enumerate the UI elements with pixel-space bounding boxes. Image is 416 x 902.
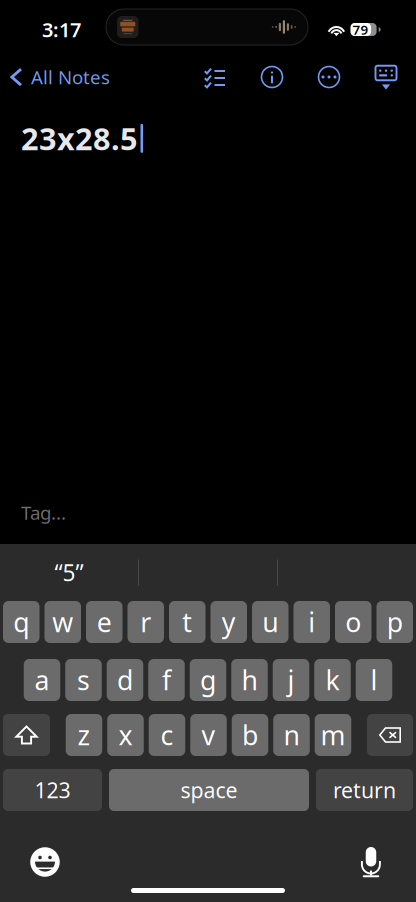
staticText: Tag... [21, 500, 66, 525]
button[interactable]: x [107, 714, 144, 756]
button[interactable]: All Notes [0, 56, 110, 98]
button[interactable]: e [86, 601, 122, 643]
staticText: n [283, 717, 299, 753]
staticText: s [77, 662, 90, 698]
button[interactable]: g [190, 659, 226, 701]
staticText: 3:17 [42, 16, 81, 43]
button[interactable]: Delete [367, 714, 413, 756]
button[interactable]: t [169, 601, 205, 643]
staticText: e [97, 604, 112, 640]
button[interactable]: k [314, 659, 351, 701]
staticText: l [370, 662, 377, 698]
staticText: k [325, 662, 339, 698]
staticText: z [77, 717, 90, 753]
staticText: space [180, 776, 237, 804]
staticText: b [242, 717, 258, 753]
staticText: p [387, 604, 403, 640]
staticText: return [333, 776, 396, 804]
button[interactable]: r [127, 601, 164, 643]
staticText: i [308, 604, 315, 640]
staticText: a [34, 662, 49, 698]
staticText: v [201, 717, 215, 753]
staticText: “5” [54, 557, 83, 587]
button[interactable]: j [273, 659, 309, 701]
button[interactable]: a [24, 659, 60, 701]
button[interactable]: Hide Keyboard [364, 55, 408, 99]
staticText: All Notes [31, 65, 110, 89]
button[interactable]: p [376, 601, 413, 643]
button[interactable]: Checklist [193, 55, 237, 99]
button[interactable]: f [148, 659, 185, 701]
button[interactable]: l [356, 659, 392, 701]
button[interactable]: q [3, 601, 39, 643]
button[interactable]: Shift [3, 714, 50, 756]
staticText: y [222, 604, 236, 640]
button[interactable]: space [109, 769, 309, 811]
staticText: j [287, 662, 294, 698]
staticText: c [160, 717, 173, 753]
staticText: f [162, 662, 171, 698]
button[interactable]: v [190, 714, 227, 756]
button[interactable]: o [335, 601, 371, 643]
staticText: q [13, 604, 29, 640]
button[interactable]: n [273, 714, 310, 756]
button[interactable]: i [293, 601, 330, 643]
staticText: o [345, 604, 361, 640]
staticText: t [182, 604, 192, 640]
button[interactable]: z [66, 714, 102, 756]
button[interactable]: h [231, 659, 268, 701]
staticText: m [320, 717, 345, 753]
button[interactable]: 123 [3, 769, 102, 811]
staticText: g [200, 662, 216, 698]
button[interactable]: b [232, 714, 268, 756]
button[interactable]: return [316, 769, 413, 811]
button[interactable]: More [307, 55, 351, 99]
staticText: r [140, 604, 151, 640]
staticText: 79 [353, 21, 369, 38]
button[interactable]: Dictation [345, 840, 397, 884]
staticText: d [117, 662, 133, 698]
button[interactable]: Emoji [19, 840, 71, 884]
button[interactable]: s [65, 659, 102, 701]
button[interactable]: w [44, 601, 81, 643]
button[interactable]: y [210, 601, 247, 643]
staticText: u [262, 604, 278, 640]
staticText: 23x28.5 [21, 118, 138, 159]
button[interactable]: c [149, 714, 185, 756]
staticText: 123 [34, 776, 70, 804]
staticText: w [52, 604, 73, 640]
button[interactable]: Note Info [250, 55, 294, 99]
button[interactable]: d [107, 659, 143, 701]
button[interactable]: u [252, 601, 288, 643]
button[interactable]: m [315, 714, 351, 756]
staticText: x [118, 717, 132, 753]
staticText: h [241, 662, 257, 698]
